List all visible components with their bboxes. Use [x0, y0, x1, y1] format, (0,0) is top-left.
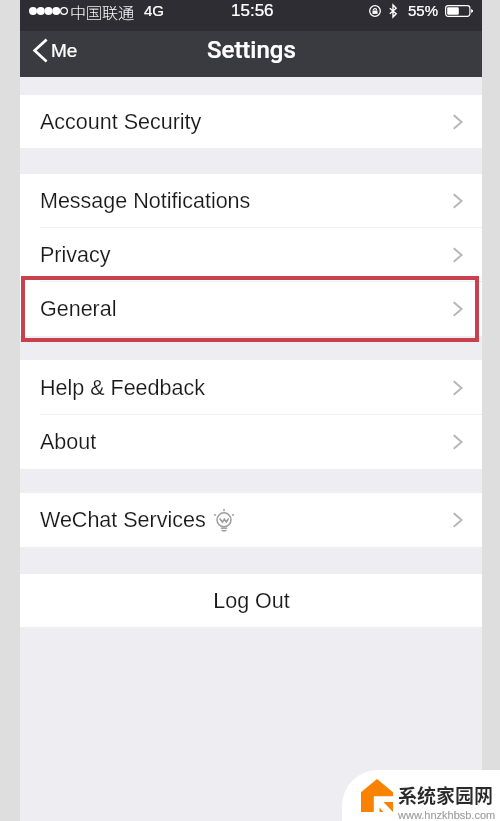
staticText: Settings — [207, 36, 296, 64]
staticText: www.hnzkhbsb.com — [398, 809, 496, 821]
staticText: Help & Feedback — [40, 376, 205, 400]
staticText: 4G — [144, 2, 165, 19]
staticText: 系统家园网 — [398, 781, 494, 809]
staticText: About — [40, 430, 97, 454]
button[interactable]: Log Out — [20, 574, 482, 627]
button[interactable]: Account Security — [20, 95, 482, 148]
staticText: Account Security — [40, 110, 202, 134]
button[interactable]: About — [20, 415, 482, 469]
staticText: General — [40, 297, 117, 321]
button[interactable]: Back to Me — [20, 34, 92, 67]
staticText: 15:56 — [231, 1, 274, 20]
staticText: Log Out — [213, 589, 290, 613]
staticText: Me — [51, 40, 78, 61]
staticText: Privacy — [40, 243, 111, 267]
button[interactable]: Message Notifications — [20, 174, 482, 228]
staticText: 中国联通 — [70, 0, 135, 21]
staticText: 55% — [408, 2, 439, 19]
button[interactable]: WeChat Services — [20, 493, 482, 547]
staticText: Message Notifications — [40, 189, 251, 213]
button[interactable]: Help & Feedback — [20, 360, 482, 415]
button[interactable]: Privacy — [20, 228, 482, 282]
staticText: WeChat Services — [40, 508, 206, 532]
button[interactable]: General — [20, 282, 482, 336]
